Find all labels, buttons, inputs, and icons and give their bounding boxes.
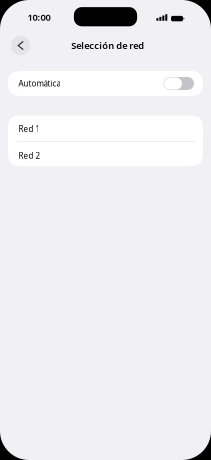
staticText: Automática: [18, 78, 60, 89]
staticText: Red 2: [18, 150, 40, 161]
button[interactable]: Automática: [8, 71, 203, 96]
button[interactable]: Red 1: [8, 115, 203, 141]
staticText: Red 1: [18, 124, 40, 134]
staticText: 10:00: [27, 11, 50, 23]
staticText: Selección de red: [71, 39, 144, 52]
button[interactable]: Back: [6, 32, 34, 58]
button[interactable]: Red 2: [8, 142, 203, 166]
